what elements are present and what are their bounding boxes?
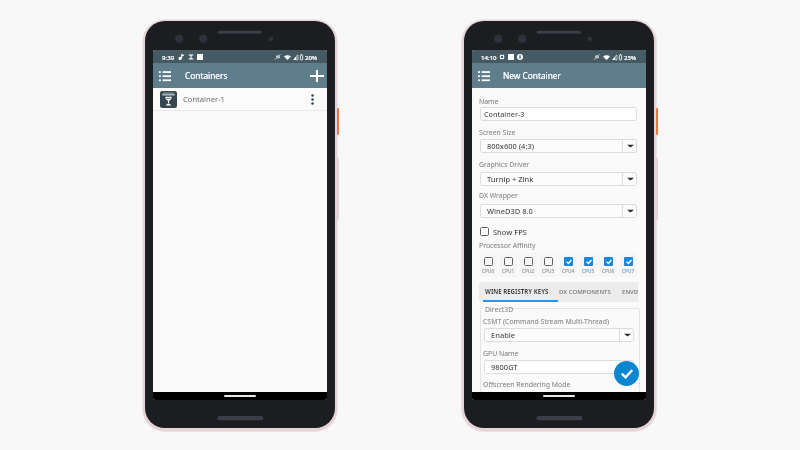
button[interactable]: Show FPS	[480, 227, 527, 236]
staticText: Show FPS	[493, 227, 527, 236]
button[interactable]: More options	[305, 92, 319, 106]
staticText: CPU5	[582, 268, 595, 275]
staticText: 800x600 (4:3)	[487, 141, 535, 151]
button[interactable]: ENVIR	[622, 282, 638, 302]
button[interactable]: Save	[614, 361, 639, 386]
staticText: CPU7	[622, 268, 635, 275]
button[interactable]: WineD3D 8.0	[480, 204, 637, 218]
button[interactable]	[484, 392, 634, 400]
staticText: 9:39	[162, 53, 175, 61]
staticText: Screen Size	[479, 128, 516, 137]
staticText: CPU3	[542, 268, 555, 275]
staticText: GPU Name	[483, 349, 519, 358]
staticText: DX Wrapper	[479, 191, 518, 200]
staticText: Container-3	[484, 109, 525, 119]
staticText: Graphics Driver	[479, 160, 530, 169]
staticText: DX COMPONENTS	[559, 287, 611, 295]
button[interactable]: CPU7	[619, 253, 637, 277]
button[interactable]: Container-3	[480, 107, 637, 121]
staticText: 20%	[305, 53, 318, 61]
button[interactable]: WINE REGISTRY KEYS	[485, 282, 549, 302]
staticText: WineD3D 8.0	[487, 206, 533, 216]
staticText: New Container	[503, 70, 561, 81]
button[interactable]: CPU0	[480, 253, 497, 277]
staticText: Processor Affinity	[479, 241, 536, 250]
button[interactable]: Enable	[484, 328, 634, 342]
staticText: CPU2	[522, 268, 535, 275]
staticText: ENVIR	[622, 287, 638, 295]
button[interactable]: CPU4	[559, 253, 577, 277]
staticText: CPU6	[602, 268, 615, 275]
button[interactable]: 9800GT	[484, 360, 634, 374]
button[interactable]: CPU2	[519, 253, 537, 277]
button[interactable]: Menu	[476, 68, 492, 84]
staticText: Name	[479, 97, 499, 106]
button[interactable]: Menu	[157, 68, 173, 84]
staticText: Container-1	[183, 94, 225, 104]
staticText: CSMT (Command Stream Multi-Thread)	[483, 317, 609, 326]
staticText: 9800GT	[491, 362, 518, 372]
staticText: 14:10	[481, 53, 497, 61]
staticText: 25%	[624, 53, 637, 61]
staticText: Turnip + Zink	[487, 174, 534, 184]
staticText: CPU1	[502, 268, 515, 275]
button[interactable]: DX COMPONENTS	[559, 282, 611, 302]
staticText: CPU0	[482, 268, 495, 275]
button[interactable]: Add container	[309, 68, 325, 84]
staticText: CPU4	[562, 268, 575, 275]
button[interactable]: CPU3	[539, 253, 557, 277]
staticText: Offscreen Rendering Mode	[483, 380, 571, 389]
staticText: WINE REGISTRY KEYS	[485, 287, 549, 295]
staticText: Enable	[491, 330, 516, 340]
button[interactable]: CPU6	[599, 253, 617, 277]
button[interactable]: Container-1	[153, 88, 327, 110]
staticText: Containers	[185, 70, 228, 81]
staticText: Direct3D	[485, 305, 514, 314]
button[interactable]: Turnip + Zink	[480, 172, 637, 186]
button[interactable]: CPU1	[499, 253, 517, 277]
button[interactable]: 800x600 (4:3)	[480, 139, 637, 153]
button[interactable]: CPU5	[579, 253, 597, 277]
